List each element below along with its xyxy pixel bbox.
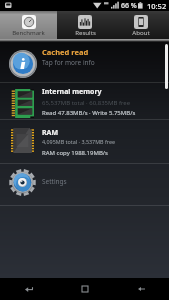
staticText: 65,537MB total · 60,835MB free: [42, 99, 131, 107]
button[interactable]: Settings: [0, 164, 169, 205]
button[interactable]: Back: [113, 278, 169, 300]
staticText: Internal memory: [42, 87, 102, 97]
staticText: 10:52: [147, 1, 167, 11]
staticText: RAM copy 1988.19MB/s: [42, 149, 108, 157]
staticText: 66 %: [121, 1, 137, 11]
staticText: Cached read: [42, 47, 89, 57]
staticText: About: [132, 28, 150, 36]
button[interactable]: Recent apps: [0, 278, 57, 300]
staticText: Settings: [42, 177, 67, 186]
button[interactable]: Benchmark: [0, 11, 57, 40]
button[interactable]: RAM: [0, 120, 169, 163]
button[interactable]: Cached read: [0, 42, 169, 82]
staticText: Results: [75, 28, 96, 36]
button[interactable]: Internal memory: [0, 83, 169, 119]
staticText: Benchmark: [12, 28, 45, 36]
staticText: Tap for more info: [42, 58, 95, 67]
button[interactable]: Home: [57, 278, 113, 300]
staticText: RAM: [42, 128, 59, 138]
staticText: Read 47.83MB/s · Write 5.75MB/s: [42, 109, 136, 117]
staticText: 4,095MB total · 3,537MB free: [42, 138, 116, 145]
button[interactable]: Results: [57, 11, 113, 40]
button[interactable]: About: [113, 11, 169, 40]
